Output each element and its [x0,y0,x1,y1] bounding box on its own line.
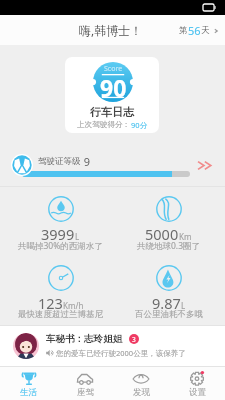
staticText: L [181,300,186,311]
staticText: 90分 [131,120,148,130]
staticText: Score [104,64,123,74]
staticText: 行车日志 [90,105,134,119]
staticText: L [75,231,80,242]
other: More levels [197,159,214,172]
button[interactable]: 3999 [8,196,113,262]
staticText: 5000 [145,224,179,244]
staticText: 您的爱车已经行驶2000公里，该保养了 [56,348,186,358]
staticText: Km [179,231,192,242]
button[interactable]: 车秘书：志玲姐姐 [13,325,225,366]
button[interactable]: 第 [179,23,219,38]
staticText: 第 [179,25,188,36]
staticText: 发现 [133,387,150,398]
staticText: 上次驾驶得分： [77,120,131,130]
staticText: 9.87 [152,293,181,313]
button[interactable]: 设置 [169,366,225,400]
staticText: 座驾 [77,387,94,398]
button[interactable]: 发现 [113,366,169,400]
staticText: 123 [38,293,63,313]
staticText: 共绕地球0.3圈了 [137,240,201,252]
staticText: 嗨,韩博士！ [79,22,143,38]
staticText: 56 [188,23,201,38]
staticText: Km/h [63,300,84,311]
staticText: 9 [81,154,91,169]
staticText: 设置 [189,387,206,398]
button[interactable]: 5000 [116,196,221,262]
button[interactable]: 生活 [0,366,57,400]
button[interactable]: 123 [8,265,113,331]
staticText: 百公里油耗不多哦 [135,309,203,320]
staticText: 3 [132,335,136,344]
staticText: 共喝掉30%的西湖水了 [18,240,103,252]
staticText: 车秘书：志玲姐姐 [46,333,122,345]
staticText: 生活 [20,387,37,398]
staticText: 最快速度超过兰博基尼 [18,309,103,320]
button[interactable]: Score [65,57,159,133]
staticText: 天 [201,25,210,36]
button[interactable]: 9.87 [116,265,221,331]
staticText: 驾驶证等级 [38,156,81,167]
button[interactable]: 驾驶证等级 [0,145,225,190]
staticText: 3999 [41,224,75,244]
staticText: 90 [100,72,127,103]
button[interactable]: 座驾 [57,366,113,400]
